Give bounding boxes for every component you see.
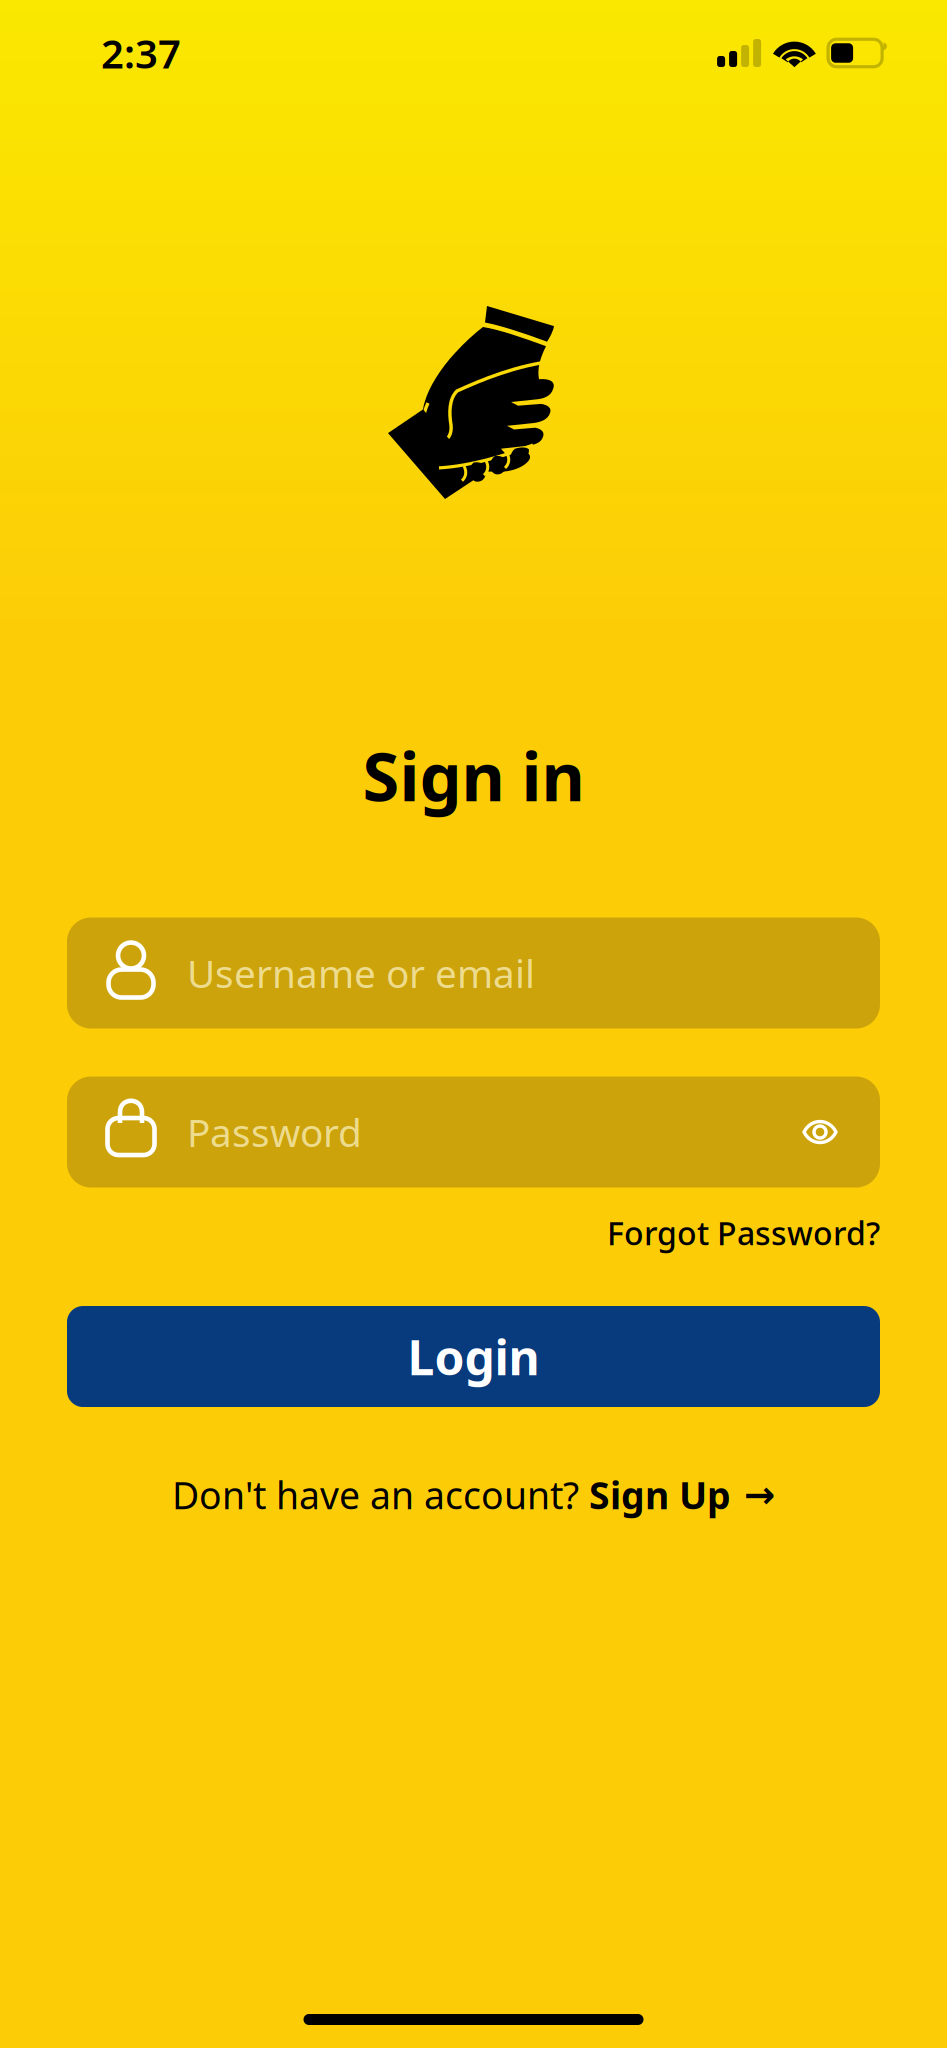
staticText: Password xyxy=(187,1106,362,1158)
staticText: Login xyxy=(407,1325,539,1388)
staticText: Sign in xyxy=(362,731,584,819)
staticText: 2:37 xyxy=(101,26,181,79)
button[interactable]: Don't have an account? xyxy=(172,1470,775,1520)
button[interactable]: Login xyxy=(67,1306,880,1407)
staticText: Sign Up xyxy=(589,1470,731,1520)
staticText: → xyxy=(731,1474,775,1516)
staticText: Forgot Password? xyxy=(607,1211,880,1254)
button[interactable]: Show password xyxy=(802,1118,838,1146)
button[interactable]: Forgot Password? xyxy=(607,1211,880,1254)
staticText: Don't have an account? xyxy=(172,1470,589,1520)
staticText: Username or email xyxy=(187,947,535,999)
